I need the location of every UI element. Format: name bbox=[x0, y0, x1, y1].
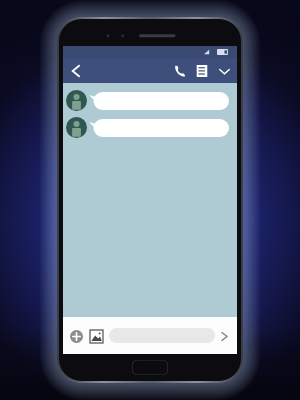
button[interactable] bbox=[66, 117, 229, 138]
button[interactable] bbox=[66, 90, 229, 111]
button[interactable] bbox=[109, 328, 215, 343]
button[interactable]: Collapse bbox=[213, 60, 235, 82]
button[interactable]: Back bbox=[65, 60, 87, 82]
button[interactable]: Send image bbox=[87, 327, 105, 345]
button[interactable]: Home bbox=[132, 360, 168, 375]
button[interactable]: Send bbox=[215, 327, 233, 345]
button[interactable]: Call bbox=[169, 60, 191, 82]
button[interactable]: Add attachment bbox=[67, 327, 85, 345]
button[interactable]: Menu bbox=[191, 60, 213, 82]
